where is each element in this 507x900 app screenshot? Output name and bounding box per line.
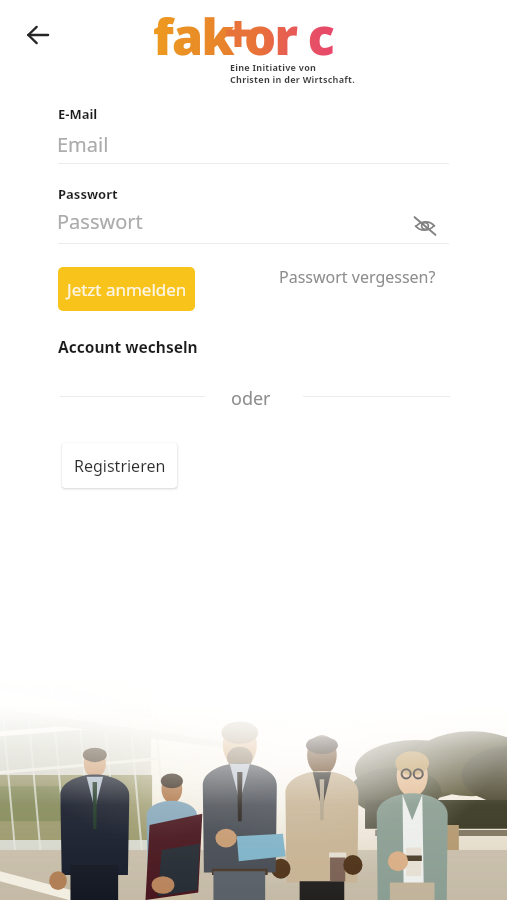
staticText: Passwort: [58, 185, 118, 203]
staticText: Passwort: [57, 208, 143, 235]
staticText: fak or c: [153, 2, 334, 70]
staticText: Account wechseln: [58, 336, 198, 357]
staticText: Passwort vergessen?: [279, 266, 436, 288]
staticText: Jetzt anmelden: [67, 278, 187, 301]
staticText: E-Mail: [58, 105, 98, 123]
staticText: oder: [231, 386, 271, 411]
button[interactable]: Back: [16, 13, 60, 57]
button[interactable]: Account wechseln: [58, 336, 198, 357]
staticText: Eine Initiative von Christen in der Wirt…: [230, 61, 356, 86]
staticText: Registrieren: [74, 455, 166, 477]
button[interactable]: Registrieren: [62, 443, 177, 488]
button[interactable]: Passwort vergessen?: [275, 262, 440, 292]
button[interactable]: Show password: [410, 211, 440, 241]
button[interactable]: Jetzt anmelden: [58, 267, 195, 311]
staticText: Email: [57, 131, 109, 158]
